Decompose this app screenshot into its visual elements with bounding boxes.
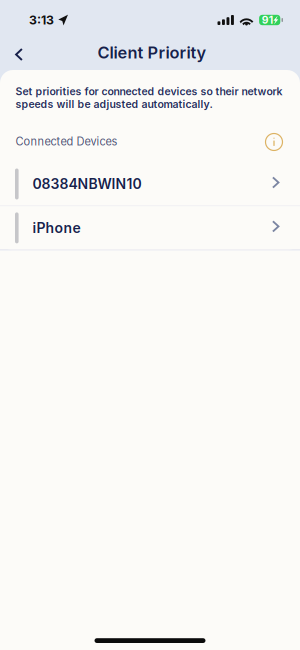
staticText: Client Priority xyxy=(97,43,206,62)
staticText: 08384NBWIN10 xyxy=(32,175,141,192)
button[interactable]: Information xyxy=(265,133,282,150)
button[interactable]: Back xyxy=(0,35,35,70)
staticText: 3:13 xyxy=(29,13,54,27)
staticText: 91 xyxy=(262,14,273,26)
staticText: Connected Devices xyxy=(15,135,117,148)
button[interactable]: 08384NBWIN10 xyxy=(0,162,300,205)
button[interactable]: iPhone xyxy=(0,206,300,249)
staticText: Set priorities for connected devices so … xyxy=(15,85,282,110)
staticText: iPhone xyxy=(32,219,80,236)
